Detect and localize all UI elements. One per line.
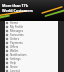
button[interactable]: Favourites	[5, 33, 58, 37]
staticText: My Profile	[10, 25, 24, 29]
staticText: Notifications	[10, 53, 27, 57]
button[interactable]: Log out	[5, 69, 58, 72]
button[interactable]: Messages	[5, 29, 58, 33]
staticText: Payments	[10, 41, 23, 45]
staticText: Wallet	[10, 49, 19, 53]
staticText: Offers	[10, 45, 19, 49]
staticText: World Customers	[2, 8, 33, 13]
staticText: Orders	[10, 37, 20, 41]
button[interactable]: Offers	[5, 45, 58, 49]
button[interactable]: Payments	[5, 41, 58, 45]
button[interactable]: Share	[5, 65, 58, 69]
button[interactable]: Orders	[5, 37, 58, 41]
button[interactable]: Notifications	[5, 53, 58, 57]
staticText: Share	[10, 65, 18, 69]
button[interactable]: Help	[5, 61, 58, 65]
staticText: Messages	[10, 29, 23, 33]
button[interactable]: My Profile	[5, 25, 58, 29]
button[interactable]: Home	[5, 21, 58, 25]
staticText: Help	[10, 61, 17, 65]
button[interactable]: Settings	[5, 57, 58, 61]
staticText: Log out	[10, 69, 21, 72]
button[interactable]: Wallet	[5, 49, 58, 53]
staticText: Settings	[10, 57, 21, 61]
staticText: Favourites	[10, 33, 24, 37]
staticText: More than 17k	[2, 3, 28, 8]
staticText: Home	[10, 21, 18, 25]
